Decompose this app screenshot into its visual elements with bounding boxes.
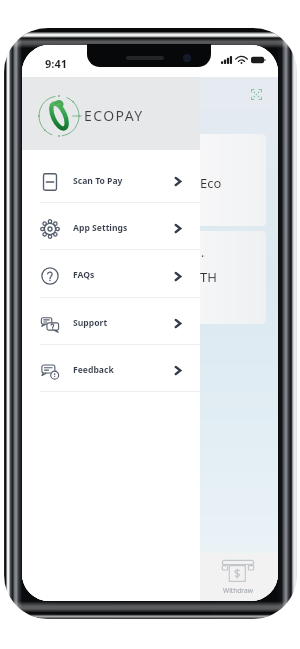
- staticText: ECOPAY: [84, 106, 144, 125]
- button[interactable]: Support: [22, 298, 200, 345]
- staticText: Feedback: [73, 364, 114, 376]
- staticText: Eco: [200, 174, 222, 192]
- button[interactable]: App Settings: [22, 203, 200, 250]
- button[interactable]: Withdraw: [222, 560, 254, 595]
- staticText: TH: [200, 268, 217, 286]
- staticText: 9:41: [45, 56, 67, 71]
- staticText: Support: [73, 317, 108, 329]
- staticText: .: [201, 244, 205, 260]
- button[interactable]: Scan To Pay: [22, 156, 200, 203]
- staticText: Scan To Pay: [73, 175, 123, 187]
- button[interactable]: Scan QR code: [251, 89, 262, 100]
- staticText: Withdraw: [223, 586, 253, 595]
- button[interactable]: Feedback: [22, 345, 200, 392]
- button[interactable]: FAQs: [22, 250, 200, 298]
- staticText: App Settings: [73, 222, 128, 234]
- staticText: FAQs: [73, 269, 95, 281]
